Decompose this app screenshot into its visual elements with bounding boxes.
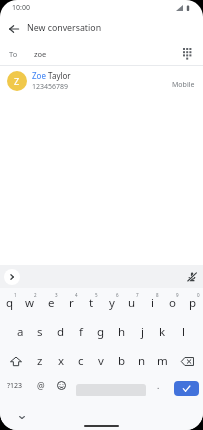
staticText: 9 (176, 292, 179, 298)
button[interactable]: b (112, 347, 132, 375)
button[interactable]: l (173, 318, 193, 346)
staticText: Taylor (46, 70, 71, 81)
button[interactable]: y (102, 289, 122, 317)
staticText: e (48, 295, 55, 311)
staticText: zoe (34, 49, 47, 59)
staticText: 2 (34, 292, 37, 298)
staticText: To (9, 49, 18, 59)
button[interactable]: z (30, 347, 50, 375)
button[interactable]: p (183, 289, 203, 317)
button[interactable]: r (61, 289, 81, 317)
button[interactable]: j (132, 318, 152, 346)
button[interactable]: ?123 (0, 375, 30, 396)
button[interactable]: Shift (1, 347, 31, 375)
staticText: 8 (156, 292, 159, 298)
staticText: i (151, 295, 154, 311)
button[interactable]: @ (31, 375, 51, 396)
button[interactable]: e (41, 289, 61, 317)
button[interactable]: n (132, 347, 152, 375)
button[interactable]: q (0, 289, 20, 317)
staticText: q (6, 295, 14, 311)
staticText: d (57, 324, 65, 340)
button[interactable]: Send (174, 381, 199, 396)
staticText: y (109, 295, 115, 311)
button[interactable]: s (30, 318, 50, 346)
staticText: a (17, 324, 24, 340)
button[interactable]: o (162, 289, 182, 317)
staticText: 123456789 (32, 82, 69, 92)
staticText: @ (37, 380, 45, 392)
staticText: p (189, 295, 197, 311)
staticText: n (138, 353, 146, 369)
staticText: t (89, 295, 94, 311)
staticText: Z (14, 75, 20, 87)
button[interactable]: f (71, 318, 91, 346)
staticText: x (58, 353, 65, 369)
staticText: s (37, 324, 43, 340)
staticText: b (118, 353, 126, 369)
staticText: 3 (55, 292, 58, 298)
staticText: z (37, 353, 43, 369)
button[interactable]: . (148, 375, 168, 396)
staticText: l (182, 324, 185, 340)
staticText: w (25, 295, 35, 311)
staticText: 7 (136, 292, 139, 298)
staticText: 4 (75, 292, 78, 298)
staticText: j (141, 324, 144, 340)
staticText: . (157, 380, 160, 392)
button[interactable]: i (142, 289, 162, 317)
staticText: c (78, 353, 84, 369)
staticText: Zoe (32, 70, 46, 81)
button[interactable]: Dialpad (177, 44, 197, 64)
staticText: g (97, 324, 105, 340)
button[interactable]: Space (76, 384, 146, 397)
button[interactable]: Z (0, 66, 203, 95)
button[interactable]: Hide keyboard (13, 409, 30, 426)
button[interactable]: Back (4, 19, 24, 39)
button[interactable]: t (81, 289, 101, 317)
staticText: 10:00 (12, 3, 30, 13)
staticText: v (98, 353, 104, 369)
staticText: 6 (116, 292, 119, 298)
staticText: 0 (197, 292, 200, 298)
staticText: 1 (14, 292, 17, 298)
button[interactable]: x (51, 347, 71, 375)
staticText: f (79, 324, 83, 340)
button[interactable]: k (152, 318, 172, 346)
button[interactable]: h (112, 318, 132, 346)
button[interactable]: g (91, 318, 111, 346)
staticText: h (118, 324, 126, 340)
staticText: 5 (95, 292, 98, 298)
staticText: k (159, 324, 166, 340)
staticText: Mobile (172, 80, 195, 90)
staticText: New conversation (27, 22, 102, 34)
staticText: ?123 (7, 381, 23, 391)
button[interactable]: Expand suggestions (4, 269, 20, 285)
button[interactable]: Backspace (172, 347, 202, 375)
staticText: r (69, 295, 74, 311)
button[interactable]: Emoji (51, 375, 71, 396)
button[interactable]: c (71, 347, 91, 375)
staticText: u (128, 295, 136, 311)
button[interactable]: w (20, 289, 40, 317)
button[interactable]: Voice input off (183, 268, 201, 286)
staticText: o (169, 295, 176, 311)
button[interactable]: v (91, 347, 111, 375)
button[interactable]: d (51, 318, 71, 346)
button[interactable]: m (152, 347, 172, 375)
staticText: m (157, 353, 168, 369)
button[interactable]: a (10, 318, 30, 346)
button[interactable]: u (122, 289, 142, 317)
